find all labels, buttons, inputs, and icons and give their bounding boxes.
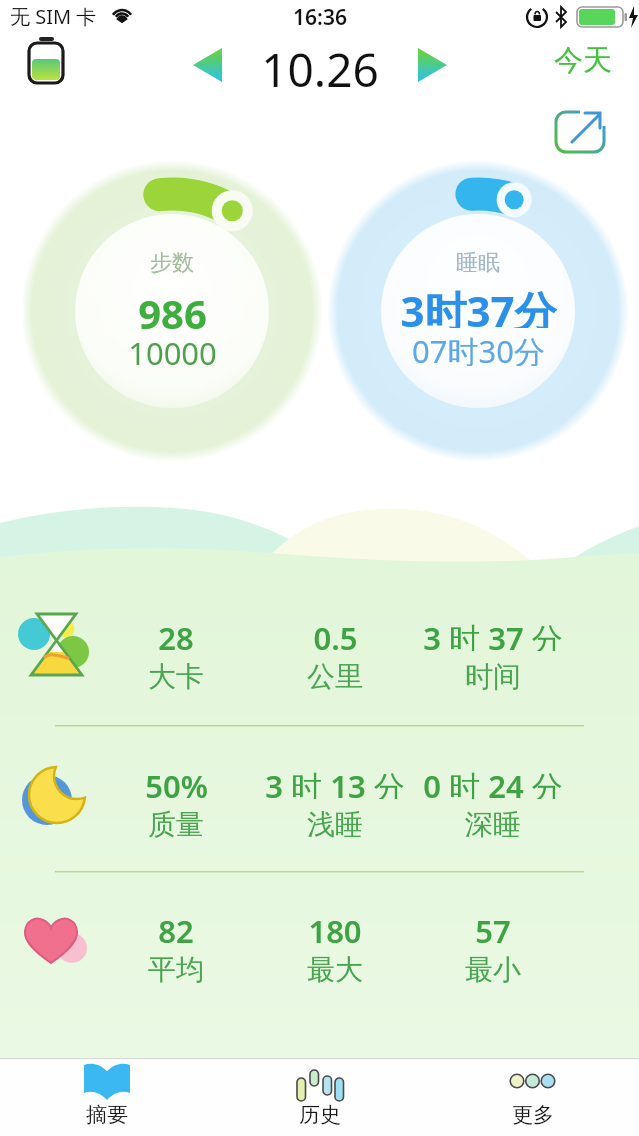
staticText: 深睡 — [465, 807, 521, 839]
staticText: 睡眠 — [456, 249, 500, 277]
staticText: 3时37分 — [400, 282, 557, 328]
staticText: 07时30分 — [412, 330, 545, 366]
staticText: 0.5 — [313, 617, 358, 651]
staticText: 986 — [138, 286, 207, 332]
button[interactable] — [180, 40, 236, 90]
button[interactable]: 历史 — [213, 1058, 426, 1136]
staticText: 大卡 — [148, 659, 204, 691]
staticText: 时间 — [465, 659, 521, 691]
staticText: 质量 — [148, 807, 204, 839]
staticText: 公里 — [307, 659, 363, 691]
staticText: 更多 — [512, 1102, 554, 1128]
staticText: 平均 — [148, 952, 204, 984]
button[interactable] — [405, 40, 461, 90]
staticText: 16:36 — [293, 3, 347, 29]
staticText: 摘要 — [86, 1102, 128, 1128]
staticText: 今天 — [554, 42, 612, 79]
button[interactable]: 更多 — [426, 1058, 639, 1136]
staticText: 步数 — [150, 249, 194, 277]
button[interactable] — [548, 104, 612, 160]
staticText: 无 SIM 卡 — [10, 3, 97, 29]
staticText: 50% — [145, 765, 208, 799]
staticText: 28 — [158, 617, 194, 651]
staticText: 0 时 24 分 — [423, 765, 563, 799]
staticText: 最大 — [307, 952, 363, 984]
staticText: 82 — [158, 910, 194, 944]
staticText: 57 — [475, 910, 511, 944]
staticText: 180 — [308, 910, 362, 944]
staticText: 3 时 13 分 — [265, 765, 405, 799]
staticText: 10000 — [128, 332, 217, 368]
button[interactable] — [336, 169, 620, 453]
staticText: 3 时 37 分 — [423, 617, 563, 651]
staticText: 最小 — [465, 952, 521, 984]
button[interactable]: 摘要 — [0, 1058, 213, 1136]
staticText: 10.26 — [261, 38, 379, 88]
staticText: 浅睡 — [307, 807, 363, 839]
staticText: 历史 — [299, 1102, 341, 1128]
button[interactable]: 今天 — [548, 40, 618, 80]
button[interactable] — [30, 169, 314, 453]
